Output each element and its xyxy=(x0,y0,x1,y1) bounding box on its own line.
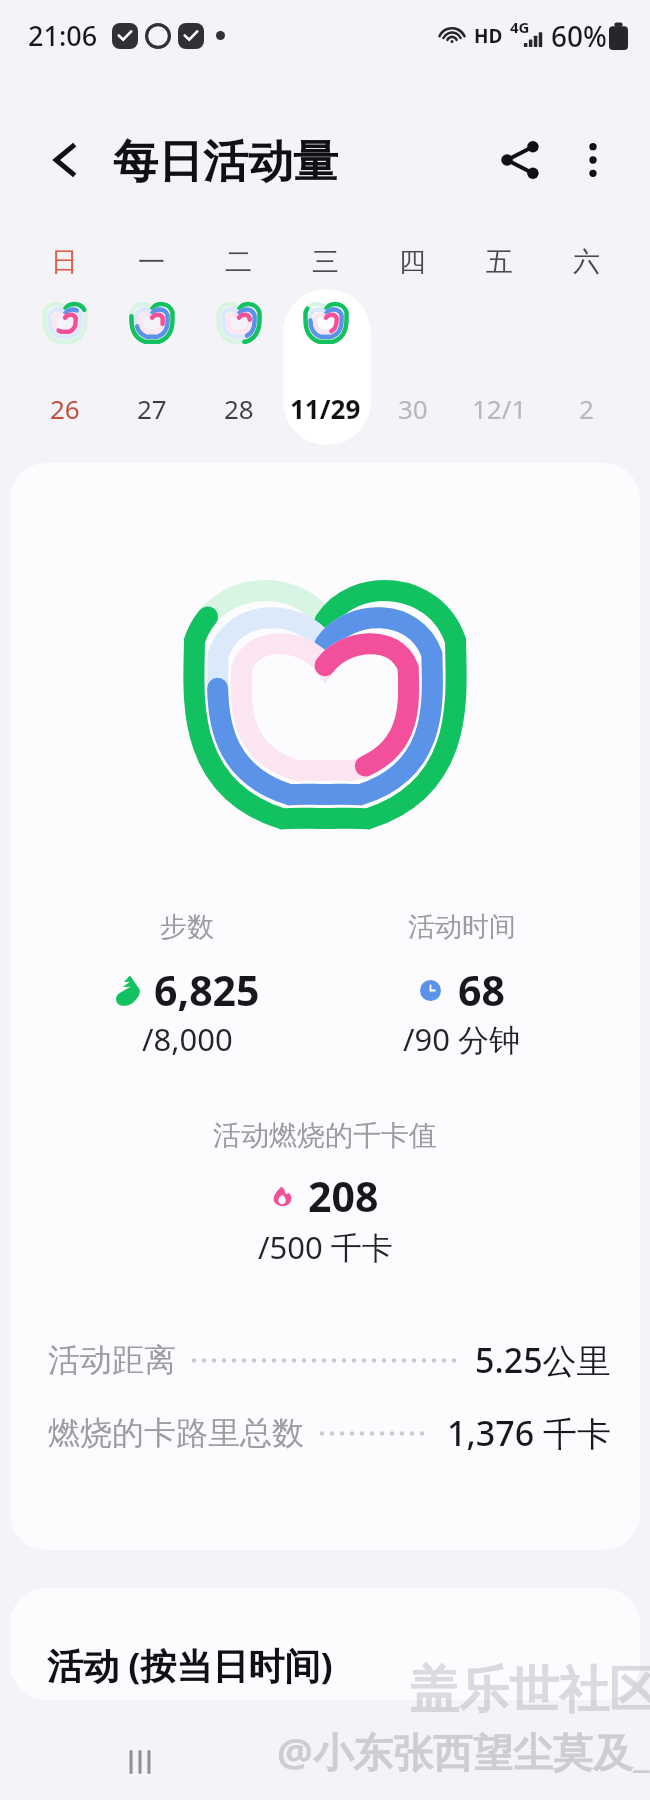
staticText: 活动燃烧的千卡值 xyxy=(213,1118,437,1153)
staticText: 21:06 xyxy=(28,17,98,54)
button[interactable]: 一 xyxy=(108,232,195,463)
button[interactable]: Recents xyxy=(112,1734,168,1790)
staticText: 六 xyxy=(573,245,600,279)
button[interactable]: 三 xyxy=(282,232,369,463)
staticText: 一 xyxy=(138,245,165,279)
staticText: /500 千卡 xyxy=(258,1226,393,1268)
button[interactable]: More options xyxy=(558,125,628,195)
staticText: 26 xyxy=(50,391,80,426)
button[interactable]: 四 xyxy=(369,232,456,463)
button[interactable]: 活动距离 xyxy=(48,1329,611,1391)
staticText: 4G xyxy=(510,17,530,37)
staticText: 日 xyxy=(51,245,78,279)
staticText: 活动距离 xyxy=(48,1340,176,1380)
button[interactable]: 二 xyxy=(195,232,282,463)
staticText: 6,825 xyxy=(154,962,260,1018)
staticText: 活动 (按当日时间) xyxy=(47,1641,333,1690)
button[interactable]: 六 xyxy=(543,232,630,463)
staticText: 68 xyxy=(458,962,505,1018)
staticText: 30 xyxy=(398,391,428,426)
staticText: 五 xyxy=(486,245,513,279)
button[interactable]: Back xyxy=(35,128,99,192)
button[interactable]: Share xyxy=(486,125,556,195)
button[interactable]: 五 xyxy=(456,232,543,463)
staticText: 28 xyxy=(224,391,254,426)
staticText: 2 xyxy=(579,391,594,426)
staticText: /90 分钟 xyxy=(403,1018,521,1060)
staticText: 11/29 xyxy=(290,391,361,426)
staticText: 活动时间 xyxy=(408,910,516,944)
button[interactable]: 燃烧的卡路里总数 xyxy=(48,1402,611,1464)
staticText: 二 xyxy=(225,245,252,279)
staticText: 208 xyxy=(308,1168,379,1224)
staticText: /8,000 xyxy=(142,1018,233,1060)
staticText: 步数 xyxy=(160,910,214,944)
staticText: 1,376 千卡 xyxy=(447,1410,611,1456)
staticText: 盖乐世社区 xyxy=(409,1659,650,1722)
staticText: 27 xyxy=(137,391,167,426)
staticText: 燃烧的卡路里总数 xyxy=(48,1413,304,1453)
staticText: HD xyxy=(474,23,503,49)
staticText: 60% xyxy=(551,17,607,55)
staticText: 每日活动量 xyxy=(113,134,338,191)
staticText: 5.25公里 xyxy=(475,1337,611,1383)
button[interactable]: 日 xyxy=(21,232,108,463)
staticText: 12/1 xyxy=(472,391,527,426)
staticText: 四 xyxy=(399,245,426,279)
staticText: 三 xyxy=(312,245,339,279)
staticText: @小东张西望尘莫及_ xyxy=(277,1724,650,1779)
